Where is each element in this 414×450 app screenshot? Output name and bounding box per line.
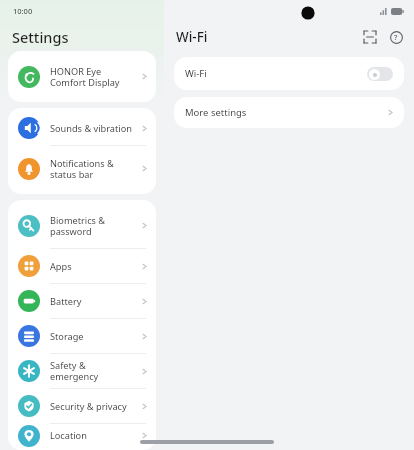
staticText: Apps <box>50 260 136 273</box>
button[interactable]: Sounds & vibration <box>8 111 156 145</box>
staticText: Wi-Fi <box>185 67 207 80</box>
button[interactable]: HONOR Eye Comfort Display <box>8 54 156 99</box>
button[interactable]: Wi-Fi toggle <box>367 67 393 81</box>
staticText: ? <box>394 32 398 42</box>
button[interactable]: Storage <box>8 319 156 353</box>
staticText: Biometrics & password <box>50 214 136 238</box>
button[interactable]: Location <box>8 424 156 447</box>
staticText: Notifications & status bar <box>50 157 136 181</box>
button[interactable]: More settings <box>174 97 404 128</box>
staticText: Security & privacy <box>50 400 136 413</box>
staticText: Storage <box>50 330 136 343</box>
button[interactable]: Help <box>383 24 409 50</box>
staticText: Wi-Fi <box>176 28 208 46</box>
button[interactable]: Scan QR code <box>357 24 383 50</box>
staticText: 10:00 <box>13 6 33 16</box>
button[interactable]: Battery <box>8 284 156 318</box>
button[interactable]: Wi-Fi <box>174 57 404 90</box>
staticText: More settings <box>185 106 247 119</box>
staticText: Location <box>50 429 136 442</box>
staticText: Battery <box>50 295 136 308</box>
button[interactable]: Biometrics & password <box>8 203 156 248</box>
button[interactable]: Safety & emergency <box>8 354 156 388</box>
staticText: Settings <box>12 27 69 47</box>
button[interactable]: Apps <box>8 249 156 283</box>
button[interactable]: Security & privacy <box>8 389 156 423</box>
button[interactable]: Notifications & status bar <box>8 146 156 191</box>
staticText: HONOR Eye Comfort Display <box>50 65 136 89</box>
staticText: Sounds & vibration <box>50 122 136 135</box>
staticText: Safety & emergency <box>50 359 136 383</box>
